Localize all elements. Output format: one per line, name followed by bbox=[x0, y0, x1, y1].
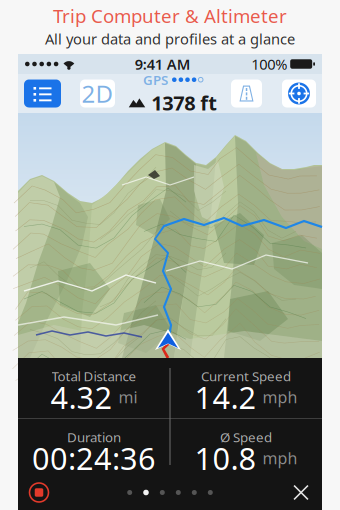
staticText: Total Distance bbox=[51, 367, 136, 385]
staticText: All your data and profiles at a glance bbox=[45, 29, 295, 49]
button[interactable]: 2D bbox=[80, 79, 115, 107]
staticText: 2D bbox=[81, 78, 113, 109]
button[interactable]: Track profile bbox=[231, 79, 262, 107]
staticText: mph bbox=[262, 447, 297, 469]
staticText: Trip Computer & Altimeter bbox=[53, 3, 287, 28]
staticText: Duration bbox=[67, 428, 121, 446]
button[interactable]: Close bbox=[289, 480, 313, 504]
staticText: 14.2 bbox=[194, 377, 256, 417]
staticText: GPS bbox=[143, 71, 168, 89]
staticText: 1378 ft bbox=[151, 90, 217, 116]
staticText: 00:24:36 bbox=[32, 438, 156, 478]
staticText: mi bbox=[118, 386, 137, 408]
staticText: 100% bbox=[251, 54, 287, 74]
staticText: mph bbox=[262, 386, 297, 408]
staticText: Ø Speed bbox=[220, 428, 272, 446]
staticText: 9:41 AM bbox=[135, 54, 191, 74]
button[interactable]: Center on location bbox=[282, 79, 316, 107]
staticText: Current Speed bbox=[201, 367, 291, 385]
staticText: 4.32 bbox=[50, 377, 112, 417]
staticText: 10.8 bbox=[194, 438, 256, 478]
button[interactable]: Data list bbox=[24, 79, 61, 107]
button[interactable]: Stop recording bbox=[27, 480, 51, 504]
